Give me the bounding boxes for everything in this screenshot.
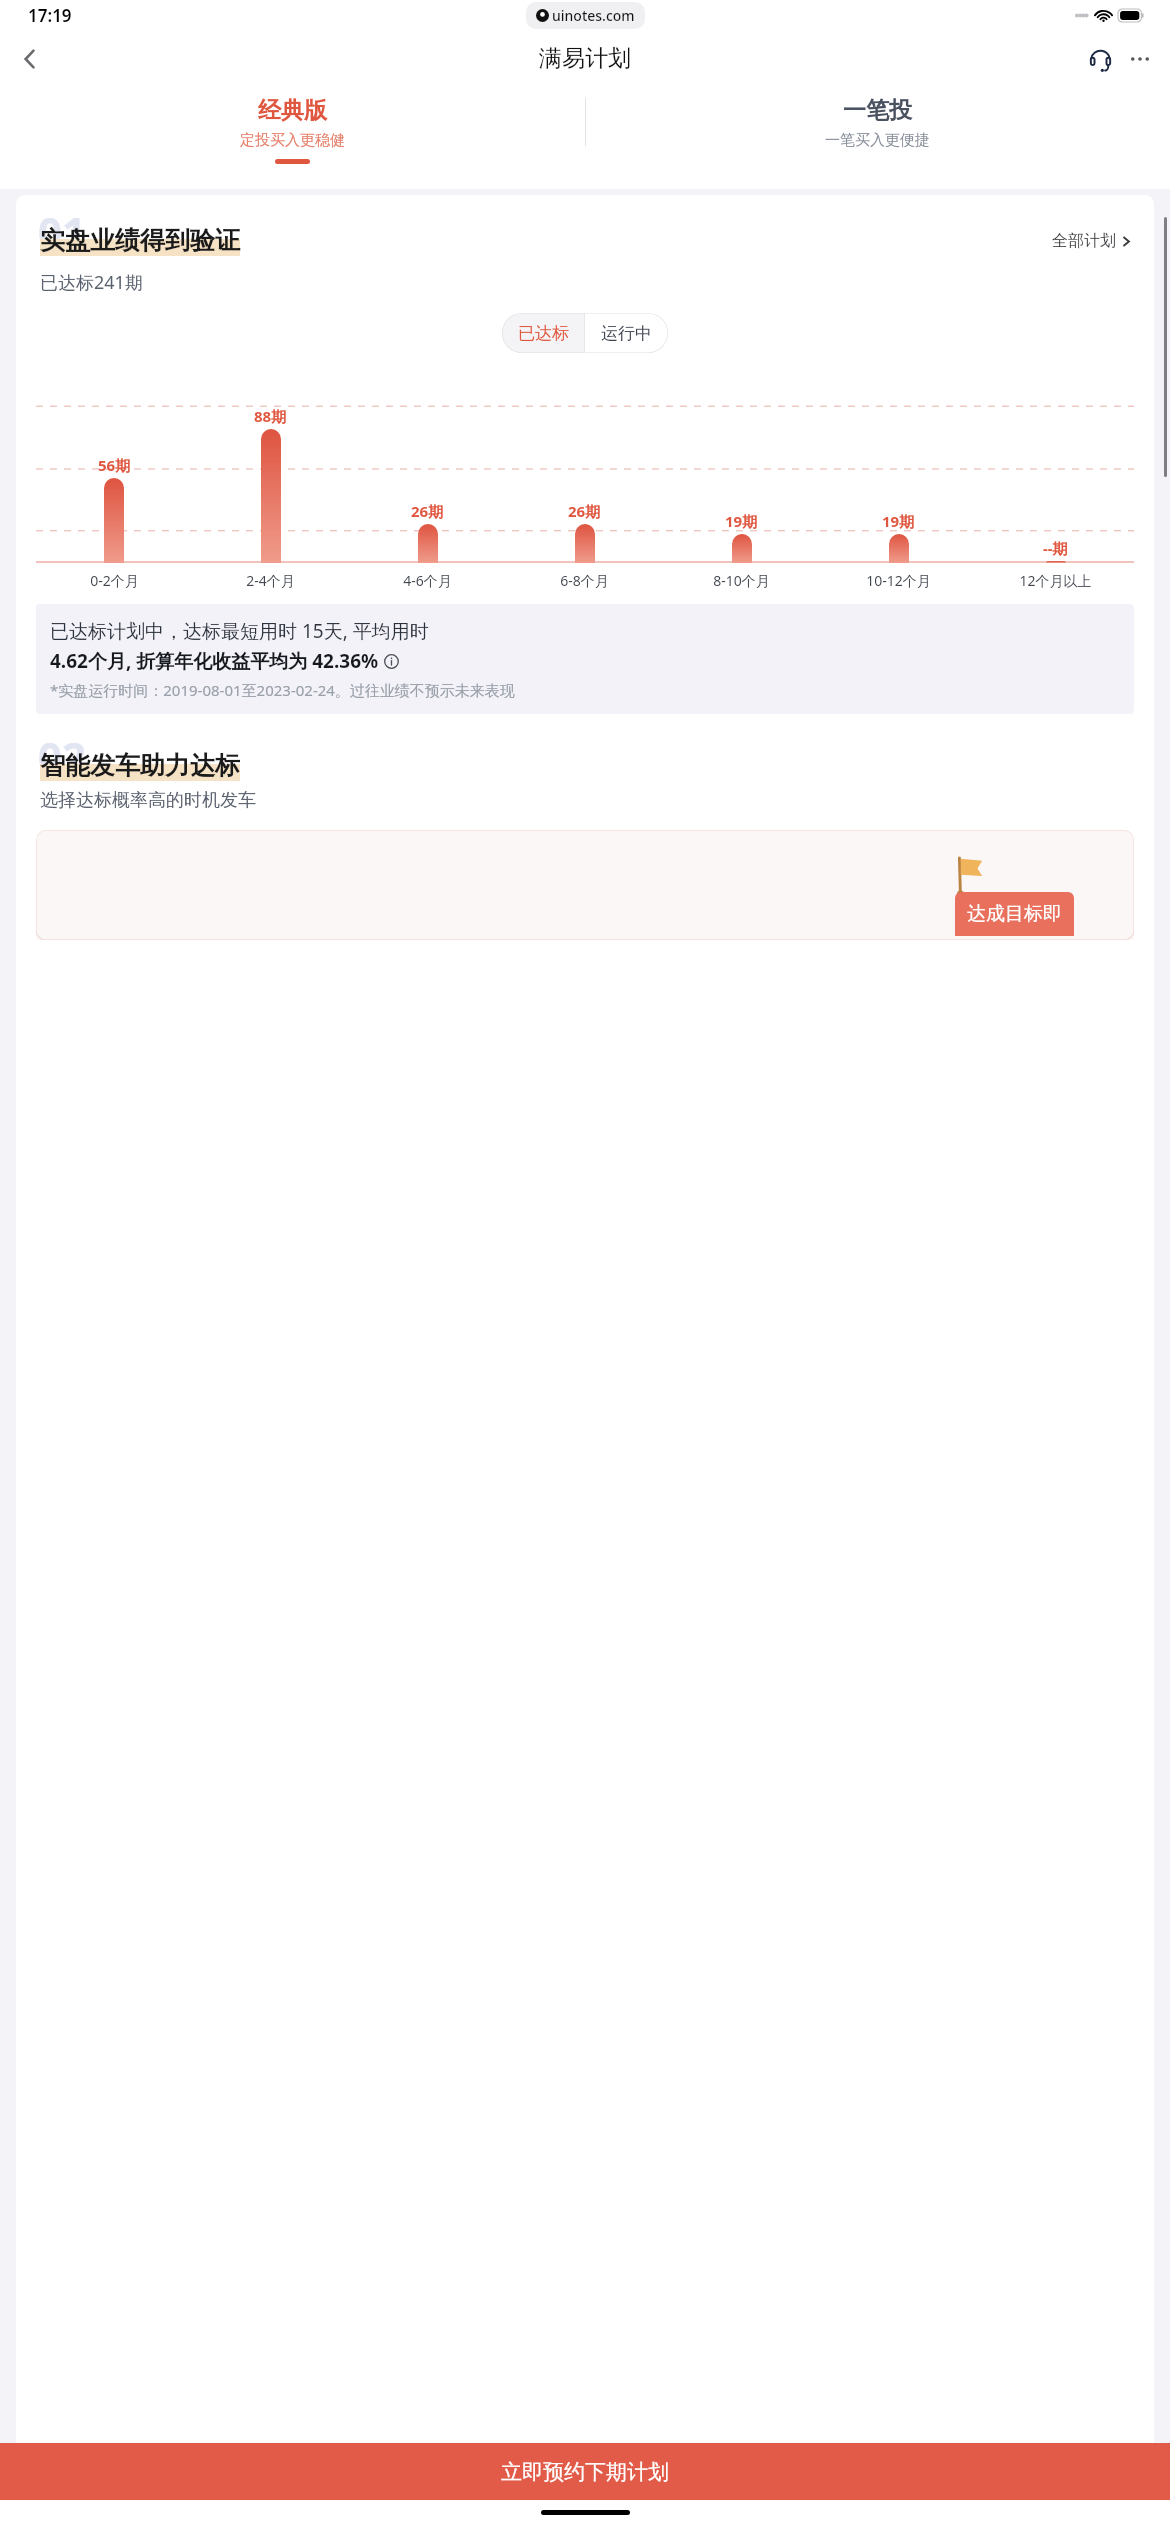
staticText: 12个月以上: [1019, 571, 1092, 590]
staticText: 56期: [98, 455, 131, 475]
staticText: 定投买入更稳健: [240, 131, 345, 150]
staticText: 19期: [725, 511, 758, 531]
staticText: 已达标: [518, 323, 569, 344]
button[interactable]: 一笔投: [585, 86, 1170, 179]
staticText: 88期: [254, 406, 287, 426]
staticText: 经典版: [258, 96, 327, 125]
staticText: 一笔投: [843, 96, 912, 125]
button[interactable]: 立即预约下期计划: [0, 2443, 1170, 2500]
staticText: 全部计划: [1052, 231, 1116, 251]
staticText: 0-2个月: [90, 571, 139, 590]
staticText: 01: [38, 203, 87, 260]
staticText: 6-8个月: [560, 571, 609, 590]
staticText: 4.62个月, 折算年化收益平均为 42.36%: [50, 648, 379, 674]
button[interactable]: 运行中: [585, 313, 668, 353]
staticText: 已达标241期: [40, 270, 143, 295]
staticText: 立即预约下期计划: [501, 2459, 669, 2485]
button[interactable]: 全部计划: [1052, 231, 1132, 251]
staticText: 02: [38, 728, 87, 785]
staticText: 8-10个月: [713, 571, 770, 590]
staticText: 达成目标即: [967, 902, 1062, 926]
staticText: 一笔买入更便捷: [825, 131, 930, 150]
staticText: 26期: [411, 501, 444, 521]
staticText: 19期: [882, 511, 915, 531]
staticText: 智能发车助力达标: [40, 750, 240, 781]
staticText: 26期: [568, 501, 601, 521]
staticText: 17:19: [28, 4, 72, 27]
staticText: 实盘业绩得到验证: [40, 225, 240, 256]
button[interactable]: 客服: [1080, 39, 1120, 79]
button[interactable]: 已达标: [502, 313, 584, 353]
button[interactable]: 经典版: [0, 86, 585, 179]
staticText: 满易计划: [539, 44, 631, 73]
staticText: 选择达标概率高的时机发车: [40, 789, 256, 812]
staticText: 10-12个月: [866, 571, 931, 590]
staticText: uinotes.com: [552, 6, 635, 25]
button[interactable]: Back: [8, 37, 52, 81]
staticText: 运行中: [601, 323, 652, 344]
staticText: 已达标计划中，达标最短用时 15天, 平均用时: [50, 618, 429, 644]
staticText: 4-6个月: [403, 571, 452, 590]
button[interactable]: 更多: [1120, 39, 1160, 79]
staticText: *实盘运行时间：2019-08-01至2023-02-24。过往业绩不预示未来表…: [50, 680, 515, 700]
staticText: --期: [1043, 538, 1068, 558]
staticText: 2-4个月: [246, 571, 295, 590]
